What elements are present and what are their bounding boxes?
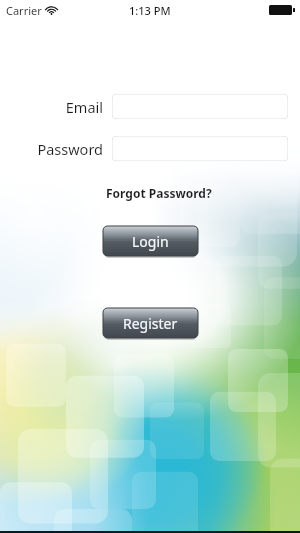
button[interactable]: Register — [103, 308, 198, 338]
button[interactable]: Login — [103, 226, 198, 256]
staticText: Login — [132, 232, 169, 251]
staticText: Password — [0, 139, 103, 159]
staticText: Register — [123, 314, 178, 333]
staticText: Forgot Password? — [106, 185, 212, 201]
staticText: Email — [0, 97, 103, 117]
button[interactable] — [112, 136, 288, 161]
button[interactable]: Forgot Password? — [104, 184, 214, 202]
staticText: 1:13 PM — [129, 3, 171, 18]
staticText: Carrier — [6, 3, 42, 18]
button[interactable] — [112, 94, 288, 119]
